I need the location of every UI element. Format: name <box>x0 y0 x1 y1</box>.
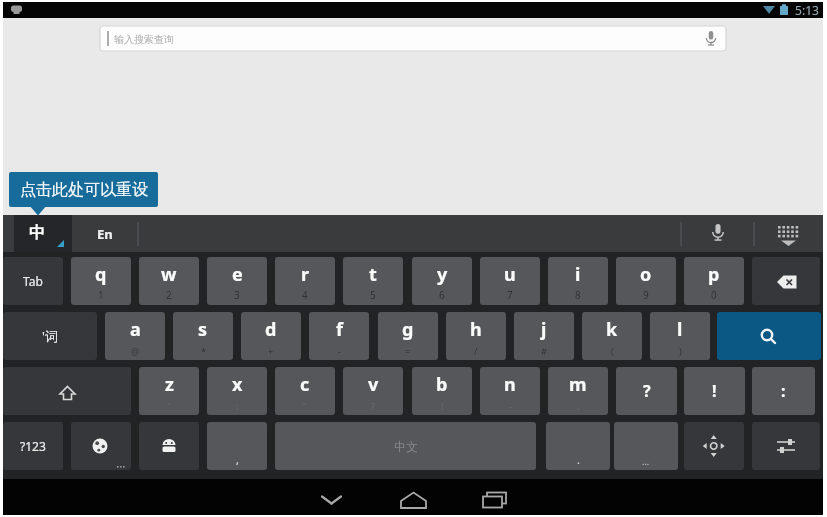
staticText: 1 <box>98 288 104 302</box>
button[interactable]: r <box>275 257 335 305</box>
button[interactable]: En <box>80 215 130 252</box>
staticText: 输入搜索查询 <box>114 33 174 46</box>
staticText: 3 <box>234 288 240 302</box>
button[interactable]: b <box>412 367 472 415</box>
button[interactable] <box>139 422 199 470</box>
staticText: u <box>504 262 516 287</box>
staticText: c <box>300 372 310 397</box>
button[interactable]: n <box>480 367 540 415</box>
staticText: - <box>509 400 512 412</box>
staticText: q <box>95 262 107 287</box>
staticText: y <box>437 262 448 287</box>
button[interactable]: , <box>207 422 267 470</box>
button[interactable]: o <box>616 257 676 305</box>
staticText: v <box>368 372 379 397</box>
button[interactable] <box>688 218 748 250</box>
staticText: ) <box>679 345 682 357</box>
button[interactable]: ! <box>684 367 745 415</box>
staticText: r <box>301 262 310 287</box>
button[interactable]: g <box>378 312 438 360</box>
button[interactable] <box>3 367 131 415</box>
staticText: ... <box>642 455 650 467</box>
button[interactable]: a <box>105 312 165 360</box>
button[interactable] <box>758 218 820 250</box>
button[interactable]: k <box>582 312 642 360</box>
staticText: p <box>708 262 720 287</box>
staticText: En <box>97 225 113 243</box>
staticText: " <box>303 400 307 412</box>
button[interactable]: j <box>514 312 574 360</box>
staticText: l <box>677 317 683 342</box>
button[interactable]: 中 <box>14 215 72 252</box>
staticText: ! <box>712 380 717 402</box>
staticText: j <box>541 317 547 342</box>
staticText: @ <box>131 345 140 357</box>
staticText: h <box>470 317 482 342</box>
staticText: 9 <box>643 288 649 302</box>
staticText: 0 <box>711 288 717 302</box>
button[interactable]: d <box>241 312 301 360</box>
button[interactable]: '词 <box>3 312 97 360</box>
button[interactable]: z <box>139 367 199 415</box>
button[interactable]: v <box>343 367 403 415</box>
staticText: # <box>541 345 547 357</box>
button[interactable] <box>717 312 821 360</box>
button[interactable]: e <box>207 257 267 305</box>
staticText: / <box>474 345 478 357</box>
staticText: d <box>265 317 277 342</box>
staticText: = <box>405 345 411 357</box>
button[interactable]: l <box>650 312 710 360</box>
staticText: ! <box>441 400 444 412</box>
staticText: 2 <box>166 288 172 302</box>
staticText: ? <box>371 400 375 412</box>
staticText: 中文 <box>394 439 418 454</box>
button[interactable]: p <box>684 257 744 305</box>
staticText: b <box>436 372 448 397</box>
button[interactable]: : <box>752 367 815 415</box>
button[interactable]: h <box>446 312 506 360</box>
staticText: a <box>130 317 141 342</box>
button[interactable]: i <box>548 257 608 305</box>
button[interactable] <box>71 422 131 470</box>
button[interactable]: s <box>173 312 233 360</box>
staticText: - <box>338 345 341 357</box>
button[interactable]: u <box>480 257 540 305</box>
button[interactable] <box>752 422 820 470</box>
staticText: 7 <box>507 288 513 302</box>
button[interactable]: ? <box>616 367 677 415</box>
button[interactable] <box>684 422 744 470</box>
button[interactable]: c <box>275 367 335 415</box>
button[interactable]: q <box>71 257 131 305</box>
staticText: f <box>336 317 343 342</box>
staticText: w <box>161 262 177 287</box>
button[interactable] <box>315 488 349 512</box>
staticText: : <box>236 400 239 412</box>
button[interactable]: x <box>207 367 267 415</box>
staticText: i <box>575 262 581 287</box>
button[interactable]: 点击此处可以重设 <box>9 172 158 207</box>
button[interactable]: Tab <box>3 257 63 305</box>
staticText: ?123 <box>20 438 46 454</box>
button[interactable]: m <box>548 367 608 415</box>
button[interactable]: ... <box>614 422 678 470</box>
button[interactable]: y <box>412 257 472 305</box>
button[interactable]: t <box>343 257 403 305</box>
staticText: 6 <box>439 288 445 302</box>
staticText: x <box>232 372 243 397</box>
staticText: '词 <box>42 327 58 345</box>
button[interactable]: w <box>139 257 199 305</box>
button[interactable]: ?123 <box>3 422 63 470</box>
button[interactable] <box>100 26 726 51</box>
staticText: : <box>781 380 786 402</box>
button[interactable]: f <box>309 312 369 360</box>
button[interactable]: . <box>546 422 610 470</box>
staticText: 点击此处可以重设 <box>20 180 148 200</box>
button[interactable] <box>397 488 431 512</box>
staticText: ( <box>611 345 614 357</box>
button[interactable] <box>752 257 820 305</box>
button[interactable] <box>478 488 512 512</box>
staticText: , <box>236 452 239 467</box>
